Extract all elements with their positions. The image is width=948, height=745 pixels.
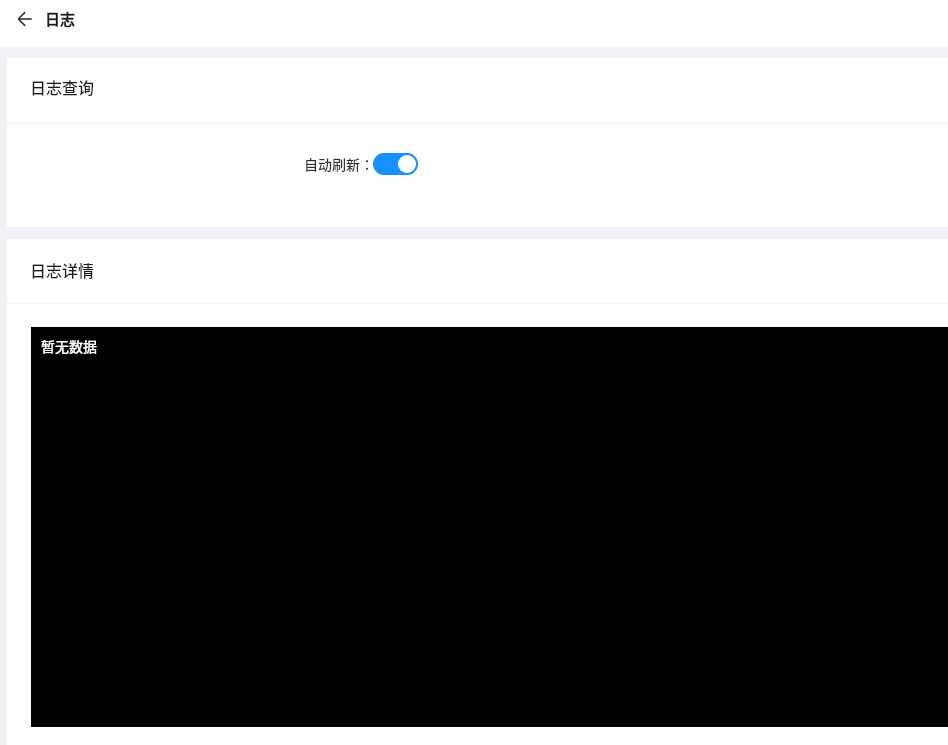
staticText: 日志查询 xyxy=(30,75,95,98)
button[interactable]: 返回 Back xyxy=(6,0,44,38)
staticText: 自动刷新： xyxy=(304,154,374,174)
staticText: 暂无数据 xyxy=(41,336,97,356)
button[interactable]: 自动刷新 开关 xyxy=(373,153,418,175)
staticText: 日志 xyxy=(45,8,76,30)
staticText: 日志详情 xyxy=(30,258,95,281)
